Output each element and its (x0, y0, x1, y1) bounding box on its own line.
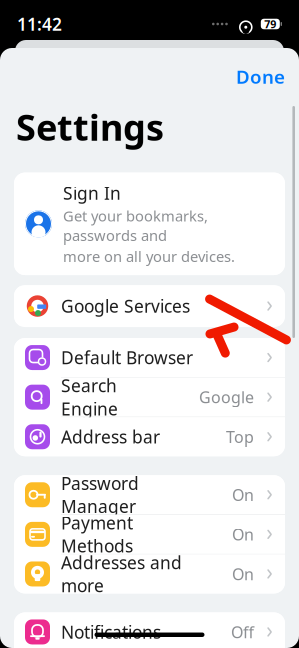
staticText: 79 (264, 17, 276, 31)
staticText: Password Manager (61, 472, 139, 518)
button[interactable]: Google Services (14, 286, 285, 325)
button[interactable]: Default Browser (14, 338, 285, 377)
staticText: Search Engine (61, 374, 118, 420)
button[interactable]: Address bar (14, 417, 285, 456)
staticText: On (232, 563, 254, 584)
staticText: Settings (16, 103, 164, 151)
staticText: Off (231, 621, 254, 642)
staticText: Notifications (61, 620, 161, 643)
staticText: On (232, 484, 254, 505)
staticText: On (232, 524, 254, 545)
staticText: Sign In (63, 182, 121, 205)
staticText: 11:42 (17, 12, 62, 35)
button[interactable]: Search Engine (14, 378, 285, 417)
staticText: Address bar (61, 425, 160, 448)
button[interactable]: Password Manager (14, 475, 285, 514)
staticText: Payment Methods (61, 511, 133, 557)
button[interactable]: Addresses and more (14, 554, 285, 593)
staticText: Google (199, 386, 254, 408)
staticText: Addresses and more (61, 551, 182, 597)
staticText: Get your bookmarks, passwords and (63, 206, 208, 245)
button[interactable]: Done (222, 56, 299, 97)
staticText: Default Browser (61, 346, 193, 369)
staticText: more on all your devices. (63, 247, 235, 266)
button[interactable]: Payment Methods (14, 515, 285, 554)
button[interactable]: Sign In (14, 173, 285, 275)
staticText: Top (226, 426, 254, 447)
staticText: Done (236, 64, 285, 89)
staticText: Google Services (61, 294, 190, 317)
button[interactable]: Notifications (14, 612, 285, 648)
